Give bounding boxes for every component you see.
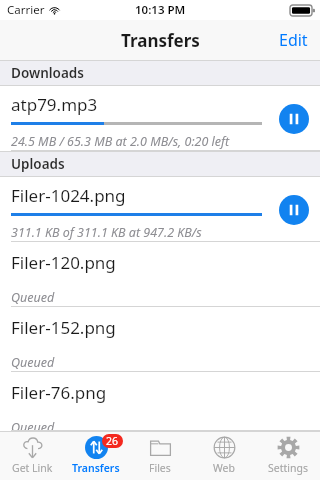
staticText: Transfers [121, 29, 200, 52]
staticText: Transfers [72, 461, 120, 475]
button[interactable]: Filer-1024.png [0, 177, 320, 242]
staticText: Edit [279, 29, 308, 51]
button[interactable]: Edit [267, 20, 320, 60]
button[interactable]: Filer-120.png [0, 242, 320, 307]
button[interactable]: Web [192, 431, 256, 480]
staticText: 26 [106, 434, 119, 448]
button[interactable]: Files [128, 431, 192, 480]
staticText: Files [149, 461, 171, 475]
staticText: Carrier [7, 2, 45, 18]
staticText: Filer-1024.png [11, 184, 126, 207]
staticText: Get Link [12, 461, 53, 475]
staticText: 10:13 PM [135, 2, 186, 18]
button[interactable]: Get Link [0, 431, 64, 480]
button[interactable]: Settings [256, 431, 320, 480]
staticText: 311.1 KB of 311.1 KB at 947.2 KB/s [11, 224, 202, 241]
staticText: Filer-120.png [11, 251, 116, 274]
staticText: Uploads [11, 155, 65, 173]
button[interactable]: Filer-152.png [0, 307, 320, 372]
button[interactable]: Filer-76.png [0, 372, 320, 431]
staticText: Downloads [11, 64, 84, 82]
staticText: Web [213, 461, 235, 475]
button[interactable]: 26 [64, 431, 128, 480]
button[interactable]: Pause transfer [279, 104, 309, 134]
staticText: Settings [268, 461, 308, 475]
staticText: 24.5 MB / 65.3 MB at 2.0 MB/s, 0:20 left [11, 133, 230, 150]
staticText: Queued [11, 354, 55, 371]
staticText: Queued [11, 419, 55, 431]
staticText: atp79.mp3 [11, 93, 98, 116]
button[interactable]: Pause transfer [279, 195, 309, 225]
button[interactable]: atp79.mp3 [0, 86, 320, 151]
staticText: Filer-152.png [11, 316, 116, 339]
staticText: Filer-76.png [11, 381, 107, 404]
staticText: Queued [11, 289, 55, 306]
